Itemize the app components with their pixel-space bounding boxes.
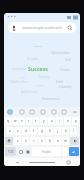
button[interactable]: r [26, 117, 32, 125]
button[interactable]: Search [67, 25, 73, 31]
button[interactable]: Voice search [8, 22, 76, 33]
staticText: Belief [56, 80, 63, 84]
staticText: Passion [60, 68, 70, 72]
button[interactable]: b [46, 137, 53, 145]
button[interactable]: k [62, 127, 69, 135]
staticText: a [9, 129, 11, 133]
staticText: www.example.com/search [22, 26, 62, 30]
staticText: t [35, 119, 37, 123]
staticText: r [28, 119, 30, 123]
button[interactable]: e [19, 117, 25, 125]
button[interactable]: Back [13, 158, 21, 166]
staticText: x [25, 139, 27, 143]
button[interactable]: Tool 3 [51, 109, 56, 114]
staticText: g [41, 129, 43, 133]
button[interactable]: p [72, 117, 79, 125]
button[interactable]: ?123 [5, 147, 16, 156]
button[interactable]: x [22, 137, 29, 145]
staticText: k [65, 129, 67, 133]
staticText: p [75, 119, 77, 123]
button[interactable]: n [54, 137, 61, 145]
staticText: o [67, 119, 69, 123]
button[interactable]: l [70, 127, 77, 135]
staticText: Self-discipline [10, 80, 28, 84]
button[interactable]: i [56, 117, 63, 125]
button[interactable]: Tool 4 [61, 109, 66, 114]
button[interactable]: z [14, 137, 21, 145]
button[interactable]: Tool 1 [29, 109, 34, 114]
staticText: Grit [21, 75, 26, 78]
staticText: m [64, 139, 67, 143]
staticText: w [14, 119, 17, 123]
staticText: English [42, 150, 51, 154]
staticText: s [17, 129, 19, 133]
staticText: y [43, 119, 45, 123]
button[interactable]: English [32, 147, 61, 156]
staticText: Growth [34, 45, 42, 48]
button[interactable]: More [72, 109, 77, 114]
button[interactable]: Voice search [11, 25, 17, 31]
staticText: n [57, 139, 59, 143]
button[interactable]: Tool 0 [19, 109, 24, 114]
staticText: Achievement [21, 90, 38, 94]
button[interactable]: y [40, 117, 47, 125]
staticText: e [21, 119, 23, 123]
staticText: Faith [65, 58, 72, 62]
button[interactable]: Home [29, 158, 55, 166]
button[interactable]: w [12, 117, 18, 125]
staticText: u [51, 119, 53, 123]
button[interactable]: Recents [64, 158, 72, 166]
button[interactable]: h [46, 127, 53, 135]
button[interactable]: d [22, 127, 29, 135]
button[interactable]: m [62, 137, 69, 145]
button[interactable]: . [62, 147, 68, 156]
button[interactable]: g [38, 127, 45, 135]
staticText: Perseverance [42, 97, 60, 101]
button[interactable]: t [33, 117, 39, 125]
button[interactable]: s [14, 127, 21, 135]
staticText: Tenacity [39, 75, 49, 79]
staticText: z [17, 139, 19, 143]
button[interactable]: u [48, 117, 55, 125]
staticText: f [33, 129, 35, 133]
staticText: v [41, 139, 43, 143]
staticText: Success [28, 65, 48, 72]
staticText: c [33, 139, 35, 143]
button[interactable]: a [7, 127, 13, 135]
button[interactable]: f [30, 127, 37, 135]
button[interactable]: c [30, 137, 37, 145]
button[interactable]: Language [25, 147, 31, 156]
staticText: Vision [37, 83, 44, 86]
staticText: Inspiration [12, 67, 27, 71]
staticText: d [25, 129, 27, 133]
staticText: q [7, 119, 9, 123]
staticText: j [57, 129, 58, 133]
button[interactable]: Enter [69, 147, 79, 156]
button[interactable]: q [5, 117, 11, 125]
staticText: ?123 [8, 150, 14, 154]
staticText: l [73, 129, 74, 133]
staticText: h [49, 129, 51, 133]
button[interactable]: Tool 2 [40, 109, 45, 114]
staticText: . [65, 150, 66, 154]
staticText: i [59, 119, 60, 123]
staticText: Creativity [59, 85, 72, 89]
button[interactable]: o [64, 117, 71, 125]
button[interactable]: Google [7, 109, 13, 115]
button[interactable]: Emoji [17, 147, 24, 156]
staticText: Empathy [27, 57, 39, 61]
staticText: Optimization [51, 51, 70, 55]
button[interactable]: Backspace [70, 137, 79, 145]
button[interactable]: j [54, 127, 61, 135]
button[interactable]: v [38, 137, 45, 145]
button[interactable]: Shift [5, 137, 13, 145]
staticText: b [49, 139, 51, 143]
